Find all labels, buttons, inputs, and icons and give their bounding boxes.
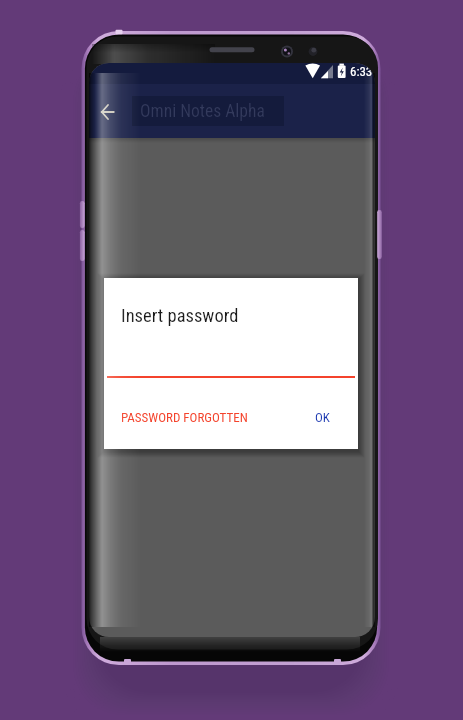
staticText: Insert password	[121, 305, 239, 327]
button[interactable]: Omni Notes Alpha	[132, 96, 284, 126]
button[interactable]: OK	[307, 404, 338, 430]
staticText: PASSWORD FORGOTTEN	[121, 410, 248, 425]
button[interactable]: Navigate up	[89, 93, 126, 130]
staticText: 6:33	[350, 64, 373, 79]
staticText: Omni Notes Alpha	[140, 101, 265, 122]
staticText: OK	[315, 410, 330, 425]
button[interactable]: PASSWORD FORGOTTEN	[113, 404, 256, 430]
